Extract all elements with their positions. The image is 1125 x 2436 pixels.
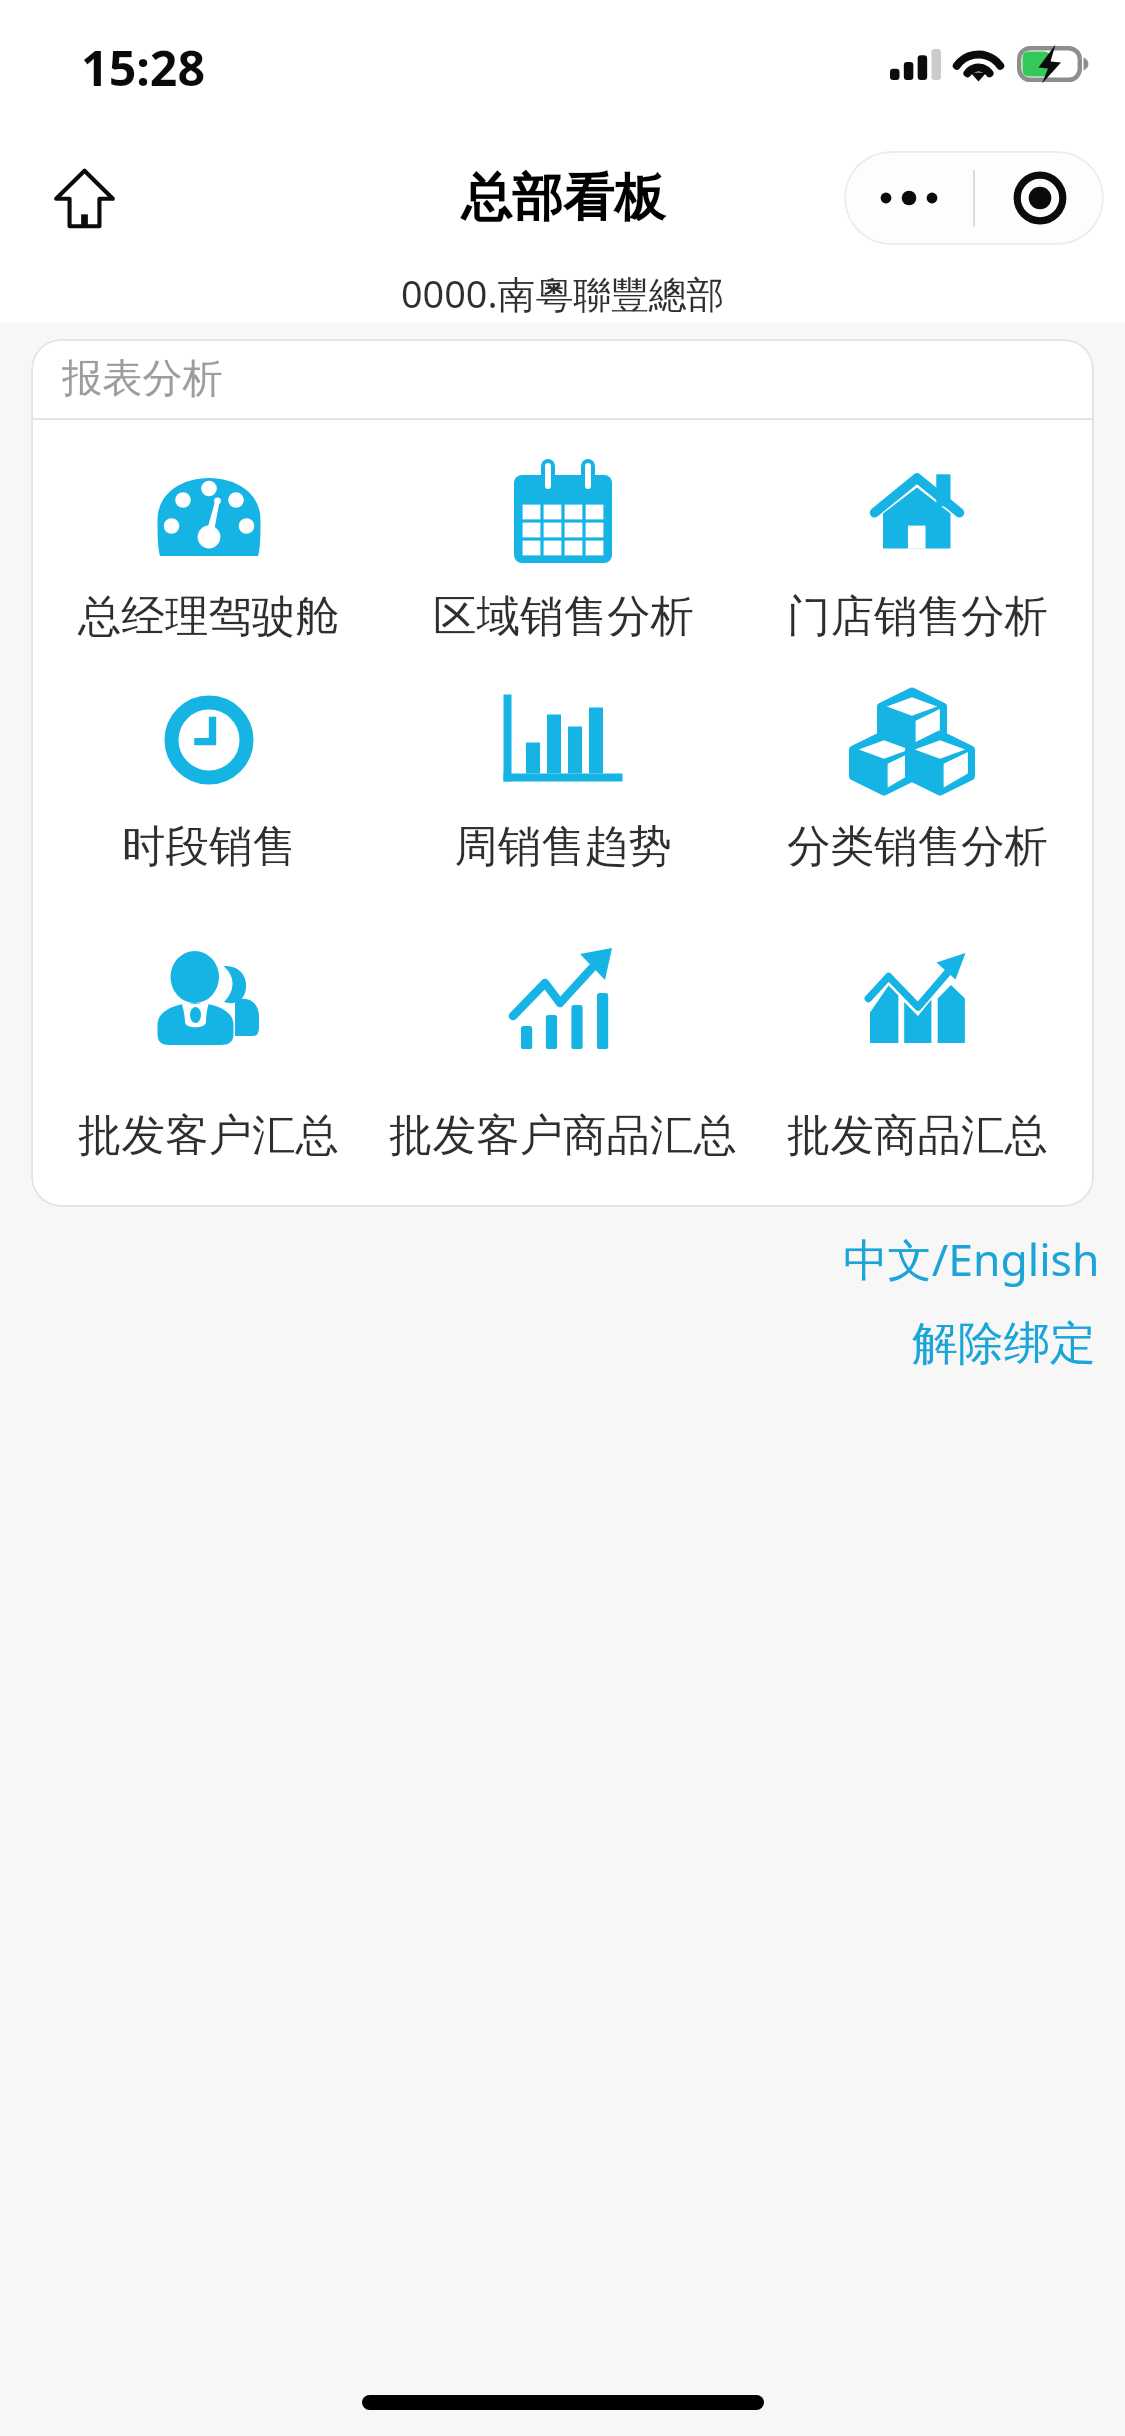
staticText: 报表分析: [62, 353, 223, 404]
staticText: 总经理驾驶舱: [78, 589, 339, 644]
staticText: 批发商品汇总: [787, 1108, 1048, 1163]
button[interactable]: 批发商品汇总: [740, 908, 1094, 1207]
button[interactable]: 中文/English: [812, 1217, 1125, 1302]
staticText: 总部看板: [461, 166, 665, 230]
button[interactable]: 周销售趋势: [386, 650, 740, 908]
staticText: 中文/English: [843, 1229, 1100, 1290]
button[interactable]: 分类销售分析: [740, 650, 1094, 908]
button[interactable]: 区域销售分析: [386, 420, 740, 650]
button[interactable]: More options: [844, 151, 973, 245]
staticText: 分类销售分析: [787, 819, 1048, 874]
staticText: 区域销售分析: [433, 589, 694, 644]
staticText: 批发客户汇总: [78, 1108, 339, 1163]
staticText: 15:28: [81, 34, 206, 100]
button[interactable]: Close: [975, 151, 1104, 245]
staticText: 周销售趋势: [454, 819, 672, 874]
button[interactable]: 时段销售: [31, 650, 386, 908]
staticText: 批发客户商品汇总: [389, 1108, 737, 1163]
button[interactable]: 批发客户商品汇总: [386, 908, 740, 1207]
staticText: 门店销售分析: [787, 589, 1048, 644]
button[interactable]: 批发客户汇总: [31, 908, 386, 1207]
staticText: 时段销售: [122, 819, 296, 874]
button[interactable]: 总经理驾驶舱: [31, 420, 386, 650]
staticText: 0000.南粵聯豐總部: [401, 268, 725, 320]
button[interactable]: 门店销售分析: [740, 420, 1094, 650]
button[interactable]: Home: [18, 132, 150, 264]
staticText: 解除绑定: [912, 1315, 1096, 1373]
button[interactable]: 解除绑定: [881, 1303, 1125, 1385]
